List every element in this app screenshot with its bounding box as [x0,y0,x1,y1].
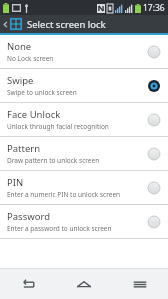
button[interactable]: Back [0,15,168,33]
staticText: Enter a password to unlock screen [7,224,112,233]
staticText: Password [7,210,50,223]
button[interactable]: Password [0,205,168,238]
button[interactable]: Face Unlock [0,103,168,136]
staticText: Swipe [7,74,34,87]
staticText: Select screen lock [27,18,106,31]
button[interactable]: Swipe [0,69,168,102]
staticText: Enter a numeric PIN to unlock screen [7,190,121,199]
button[interactable]: Menu [112,269,168,299]
staticText: Face Unlock [7,108,61,121]
staticText: Swipe to unlock screen [7,88,77,97]
other: Back [3,19,8,30]
staticText: Draw pattern to unlock screen [7,156,100,165]
button[interactable]: None [0,35,168,68]
button[interactable]: Pattern [0,137,168,170]
staticText: 17:36 [143,2,165,14]
staticText: No Lock screen [7,54,54,63]
staticText: Pattern [7,142,41,155]
button[interactable]: Home [56,269,112,299]
staticText: None [7,40,32,53]
button[interactable]: PIN [0,171,168,204]
staticText: PIN [7,176,24,189]
staticText: Unlock through facial recognition [7,122,109,131]
button[interactable]: Back [0,269,56,299]
